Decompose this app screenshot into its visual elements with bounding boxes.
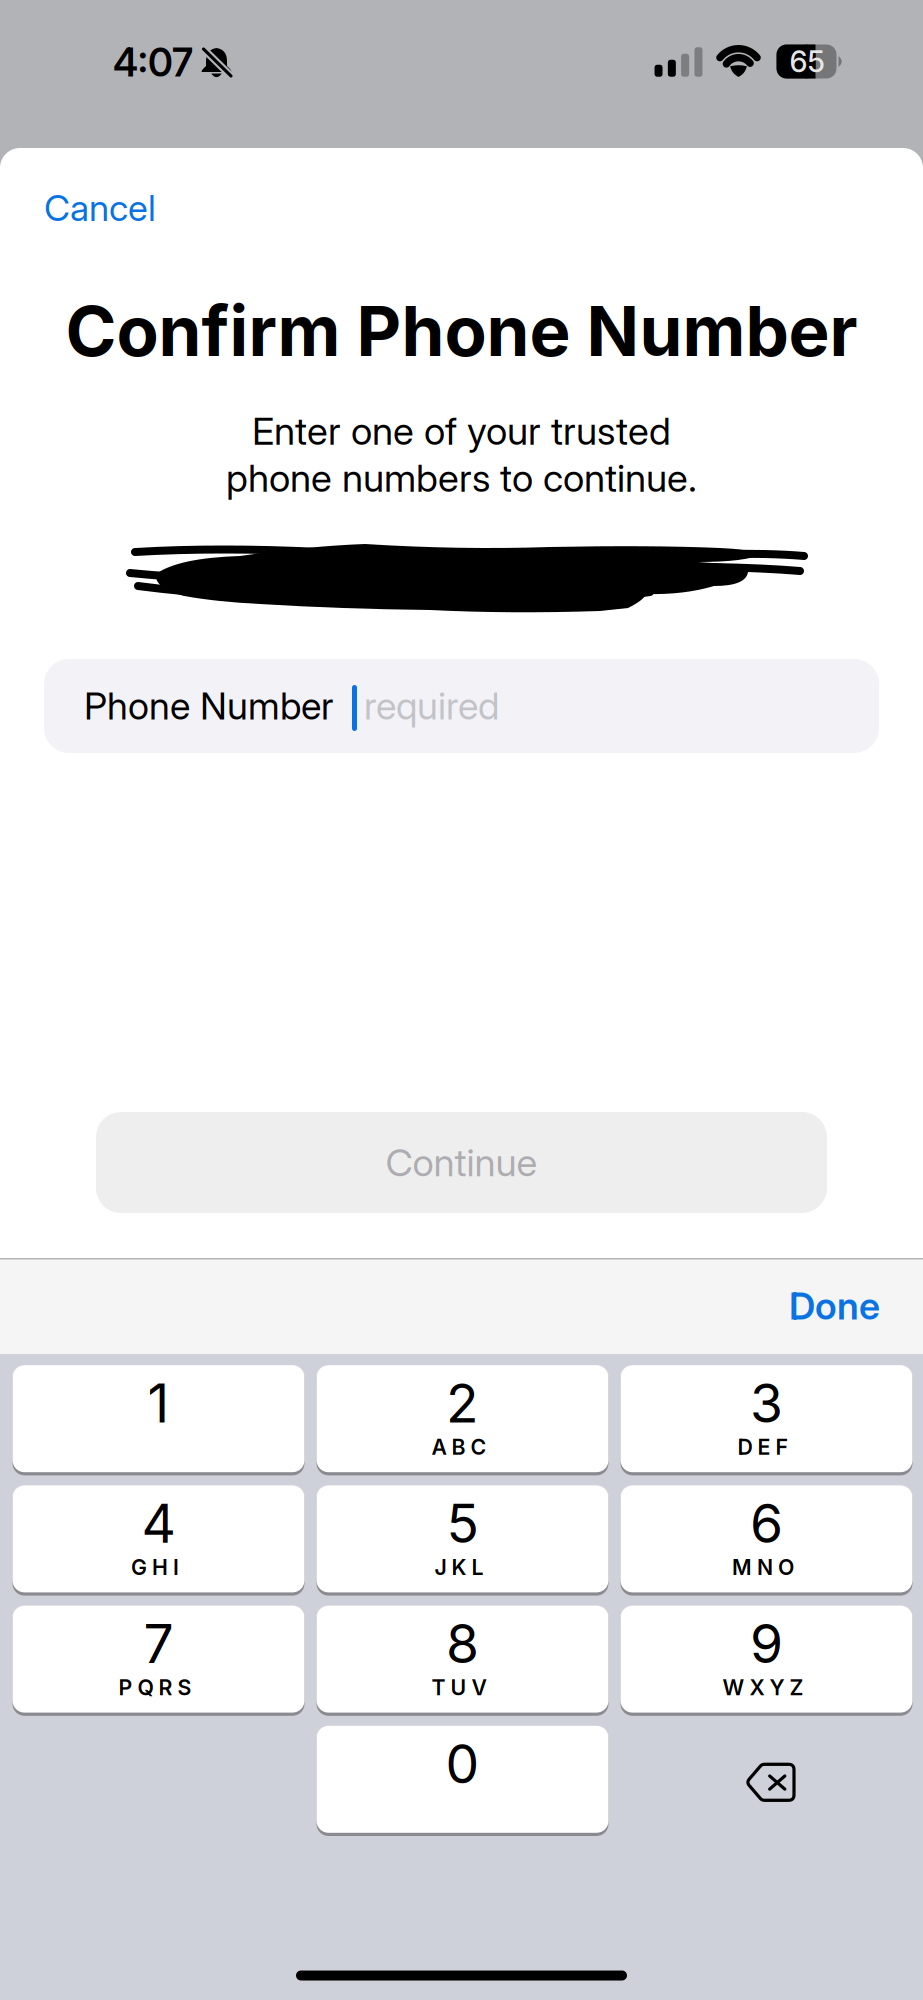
staticText: GHI: [131, 1554, 179, 1580]
staticText: DEF: [737, 1434, 788, 1460]
staticText: 65: [789, 44, 824, 79]
staticText: 7: [143, 1611, 173, 1676]
staticText: 1: [147, 1371, 169, 1435]
staticText: Done: [789, 1283, 880, 1329]
staticText: MNO: [732, 1554, 794, 1580]
staticText: ABC: [431, 1434, 486, 1460]
staticText: 0: [445, 1731, 479, 1796]
button[interactable]: 0: [316, 1727, 608, 1834]
staticText: 8: [446, 1611, 479, 1676]
staticText: Enter one of your trusted: [252, 408, 671, 454]
staticText: PQRS: [118, 1675, 191, 1700]
button[interactable]: 1: [12, 1366, 304, 1473]
staticText: JKL: [434, 1554, 483, 1580]
button[interactable]: 2: [316, 1366, 608, 1473]
button[interactable]: 9: [620, 1607, 912, 1714]
button[interactable]: 7: [12, 1607, 304, 1714]
staticText: 5: [446, 1491, 478, 1556]
button[interactable]: 8: [316, 1607, 608, 1714]
button[interactable]: Cancel: [0, 160, 244, 256]
staticText: Cancel: [44, 186, 156, 230]
staticText: 4:07: [113, 39, 193, 86]
staticText: 9: [750, 1611, 783, 1676]
staticText: Continue: [385, 1139, 537, 1185]
staticText: TUV: [431, 1675, 486, 1700]
staticText: required: [364, 683, 499, 729]
button[interactable]: 5: [316, 1486, 608, 1593]
staticText: 4: [141, 1491, 175, 1556]
staticText: 3: [750, 1371, 783, 1435]
staticText: phone numbers to continue.: [226, 455, 697, 501]
staticText: Phone Number: [84, 683, 333, 729]
staticText: 2: [446, 1371, 479, 1435]
staticText: 6: [750, 1491, 783, 1556]
button[interactable]: Continue: [96, 1112, 827, 1213]
staticText: Confirm Phone Number: [65, 289, 857, 373]
button[interactable]: Delete: [620, 1727, 912, 1834]
button[interactable]: Done: [740, 1261, 923, 1351]
button[interactable]: 6: [620, 1486, 912, 1593]
staticText: WXYZ: [722, 1675, 803, 1700]
button[interactable]: 4: [12, 1486, 304, 1593]
button[interactable]: 3: [620, 1366, 912, 1473]
